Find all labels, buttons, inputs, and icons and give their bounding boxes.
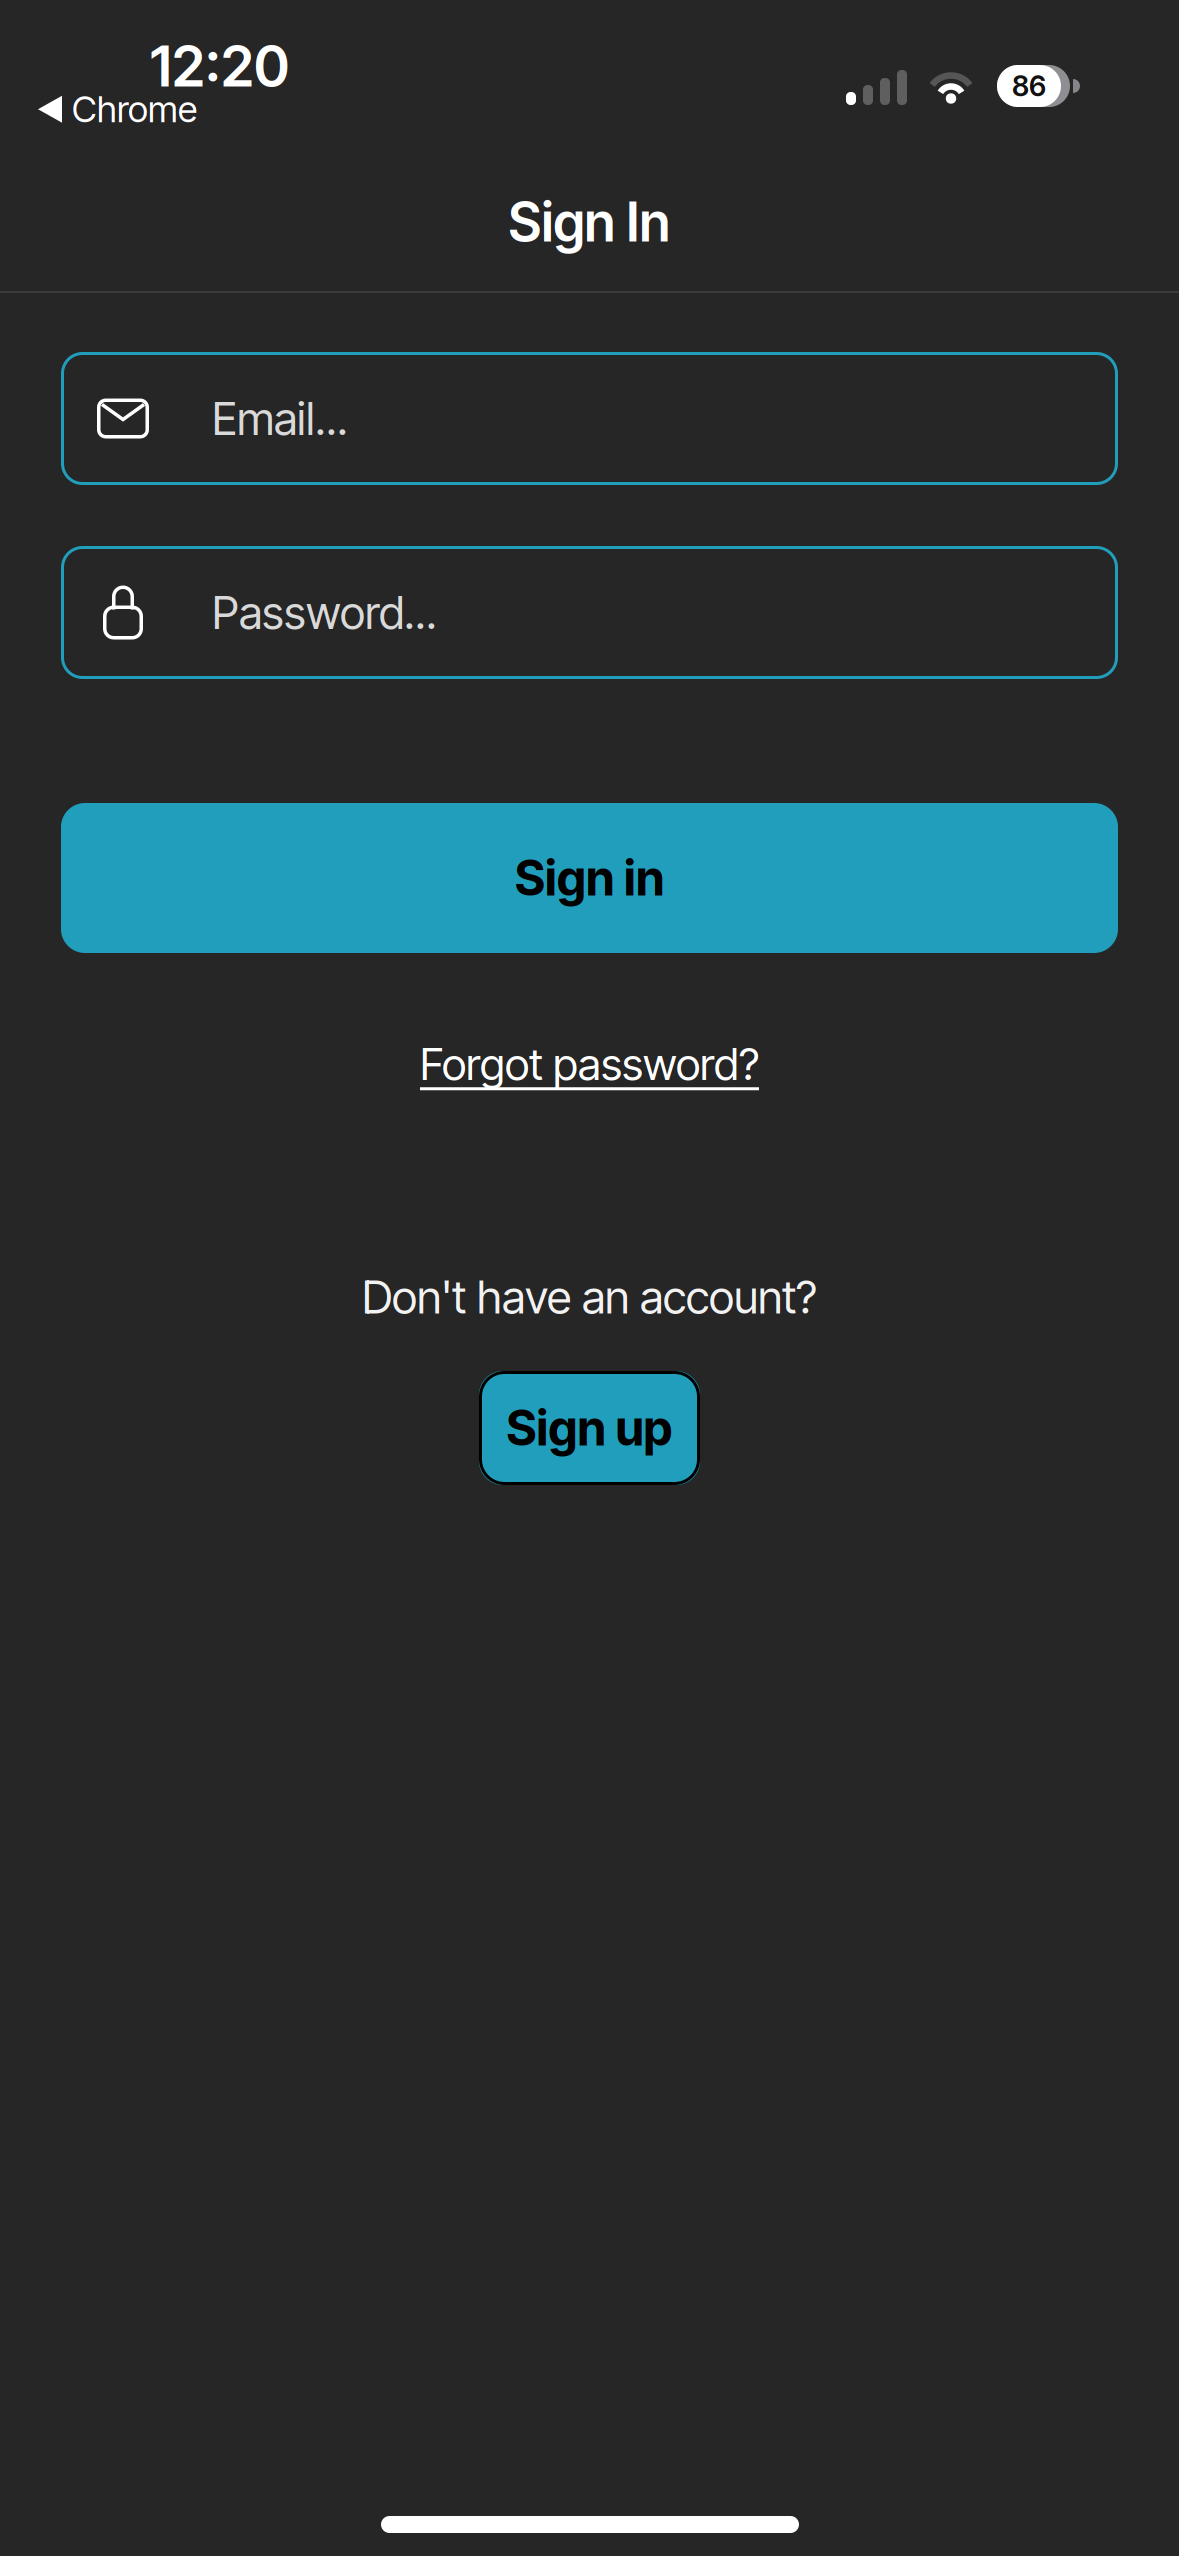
staticText: 12:20 <box>150 33 289 99</box>
button[interactable]: Sign in <box>61 803 1118 953</box>
staticText: Don't have an account? <box>362 1270 817 1324</box>
staticText: 86 <box>1012 69 1046 102</box>
staticText: Forgot password? <box>420 1038 759 1090</box>
staticText: Email... <box>212 392 348 445</box>
button[interactable]: Forgot password? <box>420 1038 759 1090</box>
staticText: Password... <box>212 586 437 639</box>
staticText: Sign In <box>508 190 670 253</box>
button[interactable]: Sign up <box>479 1371 700 1485</box>
staticText: Chrome <box>72 88 197 130</box>
button[interactable]: Password... <box>61 546 1118 679</box>
staticText: Sign in <box>515 850 664 906</box>
staticText: Sign up <box>506 1400 672 1456</box>
button[interactable]: Back to Chrome <box>38 88 197 130</box>
button[interactable]: Email... <box>61 352 1118 485</box>
